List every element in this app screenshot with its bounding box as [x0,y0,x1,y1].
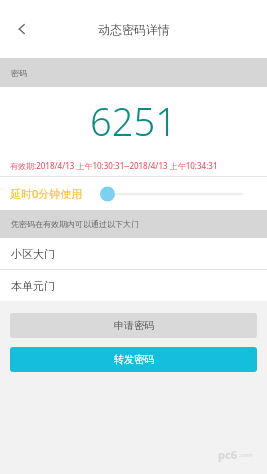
staticText: 密码 [11,68,27,78]
staticText: 延时0分钟使用 [10,186,83,201]
staticText: .com [239,451,253,459]
staticText: 有效期:2018/4/13 上午10:30:31--2018/4/13 上午10… [10,160,218,171]
button[interactable]: 转发密码 [10,347,257,372]
staticText: pc6 [218,447,237,462]
staticText: 6251 [90,95,177,147]
staticText: 动态密码详情 [98,22,170,37]
button[interactable]: 本单元门 [0,270,267,301]
button[interactable]: 申请密码 [10,313,257,338]
staticText: 本单元门 [11,279,55,293]
staticText: 凭密码在有效期内可以通过以下大门 [11,219,139,229]
button[interactable]: 延时0分钟使用 [0,177,267,210]
button[interactable]: Back [4,11,40,47]
staticText: 小区大门 [11,247,55,261]
staticText: 转发密码 [114,353,154,366]
staticText: 申请密码 [114,319,154,332]
button[interactable]: 小区大门 [0,238,267,269]
